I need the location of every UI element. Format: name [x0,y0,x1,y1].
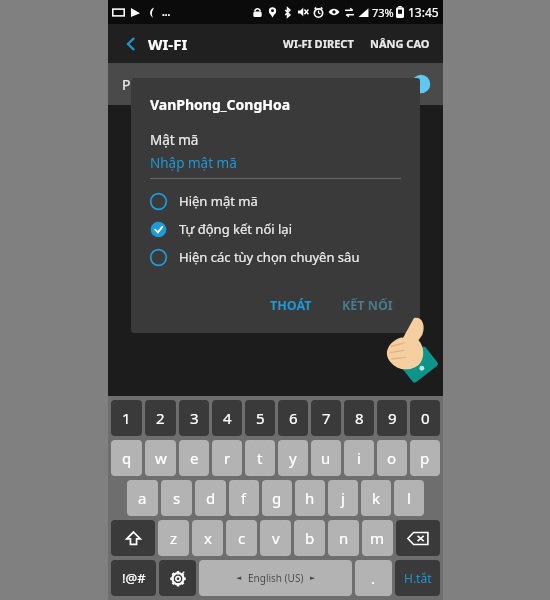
button[interactable]: h [295,480,325,516]
staticText: VP330Choa [161,544,236,563]
button[interactable]: 5 [245,400,275,436]
staticText: c [238,528,246,548]
staticText: 6 [289,408,298,428]
button[interactable]: NÂNG CAO [365,30,435,57]
staticText: s [173,488,181,508]
button[interactable]: 8 [344,400,374,436]
button[interactable]: Key [159,560,196,596]
staticText: 4 [223,408,232,428]
button[interactable]: q [111,440,142,476]
button[interactable]: 6 [278,400,308,436]
staticText: 13:45 [408,4,439,20]
button[interactable]: Nhập mật mã [150,154,401,172]
staticText: ► [310,574,316,582]
staticText: Hiện các tùy chọn chuyên sâu [179,248,360,266]
staticText: 0 [421,408,430,428]
staticText: v [272,528,280,548]
button[interactable]: THOÁT [262,291,320,320]
staticText: 2 [156,408,165,428]
button[interactable]: z [158,520,189,556]
staticText: 5 [256,408,265,428]
button[interactable]: x [192,520,223,556]
button[interactable]: 7 [311,400,341,436]
button[interactable]: Key [396,520,440,556]
staticText: Hiện mật mã [179,192,258,210]
button[interactable]: Back [118,31,144,57]
staticText: 7 [322,408,331,428]
button[interactable]: j [328,480,358,516]
staticText: w [155,448,167,468]
button[interactable]: 3 [179,400,209,436]
staticText: x [204,528,212,548]
staticText: g [272,488,282,508]
button[interactable]: n [328,520,359,556]
button[interactable]: i [344,440,374,476]
button[interactable]: g [262,480,292,516]
staticText: VanPhong_CongHoa [150,95,291,114]
staticText: j [341,488,345,508]
button[interactable]: Hiện mật mã [150,192,401,210]
staticText: a [138,488,147,508]
staticText: THOÁT [270,297,312,314]
button[interactable]: t [245,440,275,476]
button[interactable]: WI-FI DIRECT [278,30,359,57]
staticText: ThangLoiGroup A [160,577,275,596]
button[interactable]: k [361,480,391,516]
button[interactable]: 2 [145,400,176,436]
staticText: h [305,488,315,508]
staticText: t [257,448,263,468]
button[interactable]: Wi-Fi toggle [393,76,429,92]
staticText: Tự động kết nối lại [179,220,292,238]
button[interactable]: ◄ [199,560,352,596]
button[interactable]: !@# [111,560,156,596]
button[interactable]: o [377,440,407,476]
button[interactable]: VP330Choa [108,529,443,577]
button[interactable]: c [226,520,257,556]
button[interactable]: l [394,480,424,516]
staticText: k [372,488,381,508]
button[interactable]: Tự động kết nối lại [150,220,401,238]
button[interactable]: 0 [410,400,440,436]
button[interactable]: a [127,480,158,516]
button[interactable]: m [362,520,393,556]
staticText: i [357,448,361,468]
button[interactable]: y [278,440,308,476]
staticText: 1 [122,408,131,428]
button[interactable]: u [311,440,341,476]
staticText: 73% [372,5,394,20]
button[interactable]: w [145,440,176,476]
button[interactable]: 1 [111,400,142,436]
button[interactable]: Key [111,520,155,556]
staticText: e [190,448,199,468]
staticText: ... [162,5,171,19]
button[interactable]: . [355,560,392,596]
staticText: b [305,528,315,548]
staticText: Nhập mật mã [150,154,237,172]
button[interactable]: r [212,440,242,476]
staticText: 3 [190,408,199,428]
button[interactable]: v [260,520,291,556]
button[interactable]: e [179,440,209,476]
staticText: WI-FI DIRECT [283,36,354,51]
button[interactable]: b [294,520,325,556]
staticText: H.tắt [404,570,432,586]
button[interactable]: 4 [212,400,242,436]
button[interactable]: H.tắt [395,560,440,596]
staticText: 9 [388,408,397,428]
staticText: u [321,448,331,468]
staticText: r [224,448,231,468]
staticText: . [371,568,376,588]
staticText: !@# [122,569,146,587]
staticText: WI-FI [148,34,188,54]
button[interactable]: f [229,480,259,516]
staticText: 8 [355,408,364,428]
staticText: ◄ [236,574,242,582]
button[interactable]: d [195,480,226,516]
button[interactable]: KẾT NỐI [334,291,401,320]
button[interactable]: Hiện các tùy chọn chuyên sâu [150,248,401,266]
staticText: m [370,528,385,548]
staticText: z [170,528,178,548]
button[interactable]: p [410,440,440,476]
button[interactable]: s [161,480,192,516]
button[interactable]: 9 [377,400,407,436]
